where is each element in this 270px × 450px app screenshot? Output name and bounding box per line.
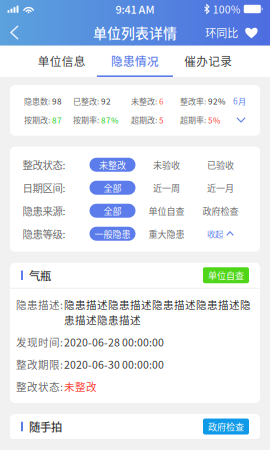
- staticText: 5: [159, 114, 164, 126]
- staticText: 单位自查: [148, 204, 184, 217]
- staticText: 随手拍: [29, 418, 62, 435]
- staticText: 已整改:: [73, 95, 101, 107]
- staticText: 重大隐患: [148, 227, 184, 240]
- staticText: 2020-06-30 00:00:00: [64, 356, 164, 372]
- button[interactable]: 单位信息: [25, 46, 98, 77]
- button[interactable]: 已验收: [193, 158, 247, 172]
- staticText: 单位信息: [38, 52, 86, 69]
- staticText: 隐患描述隐患描述隐患描述隐患描述隐患描述隐患描述: [64, 297, 251, 327]
- button[interactable]: 重大隐患: [139, 227, 193, 241]
- staticText: 隐患数:: [24, 95, 52, 107]
- staticText: 隐患来源:: [22, 203, 65, 218]
- staticText: 全部: [103, 204, 121, 217]
- staticText: 2020-06-28 00:00:00: [64, 334, 164, 350]
- staticText: 未整改:: [131, 95, 159, 107]
- button[interactable]: 返回: [2, 18, 27, 46]
- button[interactable]: 单位自查: [203, 267, 249, 283]
- staticText: 环同比: [205, 24, 238, 40]
- staticText: 92%: [208, 95, 225, 107]
- button[interactable]: 近一月: [193, 181, 247, 195]
- staticText: 催办记录: [184, 52, 232, 69]
- staticText: 气瓶: [29, 267, 51, 283]
- staticText: 政府检查: [208, 420, 244, 433]
- staticText: 未整改: [99, 158, 126, 171]
- button[interactable]: 收起: [193, 227, 247, 241]
- button[interactable]: 全部: [85, 204, 139, 218]
- button[interactable]: 6月: [227, 95, 246, 107]
- staticText: 超期改:: [131, 114, 159, 126]
- staticText: 6: [159, 95, 164, 107]
- staticText: 9:41 AM: [115, 1, 154, 17]
- button[interactable]: 未整改: [85, 158, 139, 172]
- staticText: 按期改:: [24, 114, 52, 126]
- staticText: 隐患描述:: [16, 297, 63, 312]
- staticText: 日期区间:: [22, 180, 65, 195]
- staticText: 6月: [233, 95, 246, 107]
- staticText: 近一周: [153, 181, 180, 194]
- staticText: 一般隐患: [94, 227, 130, 240]
- staticText: 98: [52, 95, 62, 107]
- button[interactable]: 环同比: [205, 18, 259, 46]
- staticText: 收起: [207, 228, 223, 240]
- staticText: 87%: [101, 114, 118, 126]
- button[interactable]: 政府检查: [193, 204, 247, 218]
- staticText: 100%: [213, 1, 241, 17]
- button[interactable]: 近一周: [139, 181, 193, 195]
- button[interactable]: 全部: [85, 181, 139, 195]
- staticText: 隐患情况: [111, 52, 159, 69]
- staticText: 5%: [208, 114, 220, 126]
- staticText: 92: [101, 95, 111, 107]
- button[interactable]: 单位自查: [139, 204, 193, 218]
- staticText: 整改状态:: [22, 157, 65, 172]
- staticText: 整改状态:: [16, 379, 63, 394]
- button[interactable]: 展开: [227, 116, 246, 124]
- button[interactable]: 政府检查: [203, 418, 249, 434]
- staticText: 发现时间:: [16, 334, 63, 350]
- button[interactable]: 未验收: [139, 158, 193, 172]
- staticText: 未验收: [153, 158, 180, 171]
- staticText: 近一月: [207, 181, 234, 194]
- staticText: 政府检查: [202, 204, 238, 217]
- button[interactable]: 一般隐患: [85, 227, 139, 241]
- staticText: 全部: [103, 181, 121, 194]
- staticText: 整改期限:: [16, 356, 63, 372]
- staticText: 整改率:: [180, 95, 208, 107]
- staticText: 未整改: [64, 379, 97, 394]
- staticText: 超期率:: [180, 114, 208, 126]
- button[interactable]: 催办记录: [172, 46, 245, 77]
- staticText: 按期率:: [73, 114, 101, 126]
- staticText: 单位列表详情: [93, 22, 177, 43]
- button[interactable]: 隐患情况: [98, 46, 172, 77]
- staticText: 隐患等级:: [22, 226, 65, 241]
- staticText: 单位自查: [208, 269, 244, 282]
- staticText: 已验收: [207, 158, 234, 171]
- staticText: 87: [52, 114, 62, 126]
